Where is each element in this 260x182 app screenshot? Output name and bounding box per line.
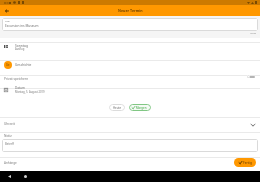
staticText: Neuer Termin (118, 8, 143, 13)
button[interactable]: Morgen (129, 104, 151, 111)
button[interactable]: Startbildschirm (21, 172, 30, 181)
staticText: Anhänge (4, 161, 17, 165)
staticText: Betreff (5, 142, 15, 146)
button[interactable]: Uhrzeit (0, 117, 260, 133)
button[interactable]: Zurück (2, 6, 11, 15)
staticText: Sonntag (15, 43, 28, 47)
staticText: Montag, 5. August 2019 (15, 90, 45, 94)
button[interactable]: Heute (109, 104, 125, 111)
staticText: Privat speichern (4, 77, 29, 81)
staticText: Fertig (243, 161, 252, 165)
staticText: 20/30 (0, 32, 256, 35)
staticText: Uhrzeit (4, 122, 15, 126)
button[interactable]: Titel (2, 18, 258, 31)
staticText: Morgen (136, 106, 147, 110)
button[interactable]: Zurück (5, 172, 14, 181)
staticText: Excursion ins Museum (5, 24, 39, 28)
button[interactable]: Privat speichern (0, 75, 260, 89)
staticText: Datum (15, 86, 25, 90)
staticText: Notiz (4, 134, 12, 138)
staticText: Ausflug (15, 47, 25, 51)
staticText: Ge (6, 63, 10, 67)
staticText: Heute (113, 106, 121, 110)
button[interactable]: Betreff (2, 139, 258, 152)
button[interactable]: Sonntag (0, 42, 260, 60)
other: Aufklappen (251, 124, 255, 126)
button[interactable]: Ge (0, 60, 260, 75)
button[interactable]: Fertig (234, 158, 256, 167)
button[interactable]: Datum (0, 85, 260, 99)
staticText: Geschichte (15, 63, 32, 67)
staticText: Titel (5, 19, 10, 22)
